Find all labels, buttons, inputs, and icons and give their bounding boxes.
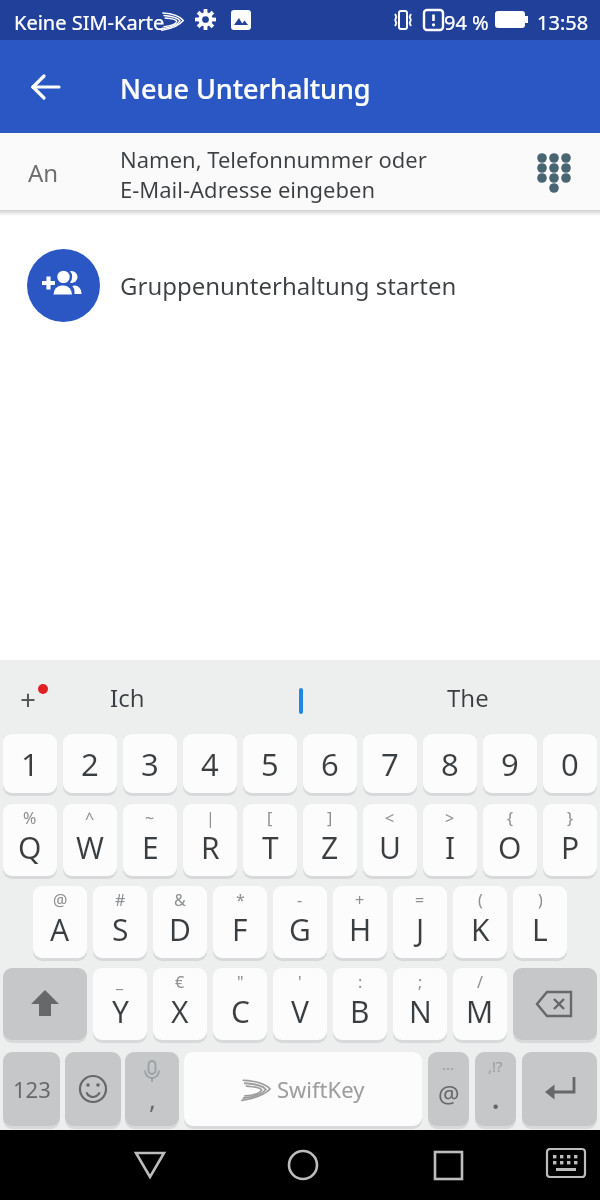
staticText: _ <box>116 971 124 993</box>
button[interactable]: 1 <box>3 734 57 793</box>
staticText: Keine SIM-Karte <box>14 9 165 36</box>
staticText: S <box>112 909 129 950</box>
button[interactable]: ~ <box>123 804 177 876</box>
button[interactable]: ( <box>453 886 507 958</box>
button[interactable] <box>513 968 597 1040</box>
button[interactable]: 0 <box>543 734 597 793</box>
button[interactable]: 123 <box>3 1052 60 1126</box>
button[interactable]: - <box>273 886 327 958</box>
button[interactable]: + <box>8 666 58 720</box>
button[interactable]: | <box>183 804 237 876</box>
staticText: < <box>385 807 395 829</box>
button[interactable]: 4 <box>183 734 237 793</box>
button[interactable]: # <box>93 886 147 958</box>
staticText: % <box>23 807 37 829</box>
button[interactable]: 5 <box>243 734 297 793</box>
staticText: @ <box>438 1077 460 1110</box>
button[interactable]: Gruppenunterhaltung starten <box>0 235 600 335</box>
staticText: Gruppenunterhaltung starten <box>120 269 457 302</box>
staticText: 123 <box>13 1074 51 1104</box>
button[interactable]: 2 <box>63 734 117 793</box>
button[interactable]: ; <box>393 968 447 1040</box>
button[interactable]: The <box>400 666 535 728</box>
button[interactable]: } <box>543 804 597 876</box>
staticText: 94 % <box>444 9 489 36</box>
button[interactable]: ] <box>303 804 357 876</box>
staticText: ) <box>538 889 543 911</box>
staticText: . <box>492 1081 500 1116</box>
button[interactable]: , <box>125 1052 179 1126</box>
button[interactable]: { <box>483 804 537 876</box>
button[interactable]: _ <box>93 968 147 1040</box>
button[interactable]: [ <box>243 804 297 876</box>
button[interactable]: 7 <box>363 734 417 793</box>
button[interactable] <box>65 1052 121 1126</box>
staticText: V <box>291 991 309 1032</box>
button[interactable]: " <box>213 968 267 1040</box>
button[interactable]: = <box>393 886 447 958</box>
button[interactable]: < <box>363 804 417 876</box>
button[interactable]: ' <box>273 968 327 1040</box>
staticText: C <box>231 991 250 1032</box>
staticText: } <box>567 807 574 829</box>
button[interactable]: 3 <box>123 734 177 793</box>
staticText: [ <box>267 807 273 829</box>
staticText: Namen, Telefonnummer oder <box>120 144 427 174</box>
staticText: * <box>236 889 245 911</box>
staticText: R <box>201 827 220 868</box>
button[interactable]: @ <box>33 886 87 958</box>
button[interactable] <box>538 1135 594 1191</box>
staticText: 6 <box>321 743 339 785</box>
button[interactable]: ... <box>428 1052 469 1126</box>
button[interactable]: ) <box>513 886 567 958</box>
button[interactable] <box>3 968 87 1040</box>
button[interactable]: An <box>0 133 600 210</box>
button[interactable]: Ich <box>60 666 195 728</box>
button[interactable]: 9 <box>483 734 537 793</box>
staticText: € <box>175 971 185 993</box>
staticText: ] <box>327 807 333 829</box>
button[interactable]: > <box>423 804 477 876</box>
staticText: 4 <box>201 743 219 785</box>
staticText: G <box>289 909 311 950</box>
button[interactable]: & <box>153 886 207 958</box>
button[interactable] <box>418 1135 478 1195</box>
staticText: ~ <box>145 807 155 829</box>
staticText: T <box>262 827 279 868</box>
staticText: I <box>445 827 456 868</box>
staticText: ^ <box>85 807 95 829</box>
staticText: U <box>379 827 401 868</box>
button[interactable] <box>522 1052 597 1126</box>
button[interactable]: + <box>333 886 387 958</box>
button[interactable]: 8 <box>423 734 477 793</box>
staticText: " <box>237 971 244 993</box>
button[interactable] <box>530 147 578 195</box>
staticText: H <box>349 909 372 950</box>
button[interactable]: ,!? <box>475 1052 516 1126</box>
staticText: N <box>409 991 432 1032</box>
button[interactable] <box>273 1135 333 1195</box>
staticText: ( <box>478 889 483 911</box>
staticText: # <box>115 889 126 911</box>
staticText: Y <box>112 991 129 1032</box>
staticText: 1 <box>21 743 39 785</box>
staticText: E-Mail-Adresse eingeben <box>120 174 376 204</box>
button[interactable]: : <box>333 968 387 1040</box>
staticText: = <box>415 889 425 911</box>
staticText: 8 <box>441 743 459 785</box>
staticText: + <box>355 889 365 911</box>
button[interactable]: / <box>453 968 507 1040</box>
staticText: Q <box>18 827 42 868</box>
staticText: Z <box>321 827 339 868</box>
button[interactable] <box>120 1135 180 1195</box>
staticText: D <box>169 909 191 950</box>
button[interactable]: € <box>153 968 207 1040</box>
button[interactable]: % <box>3 804 57 876</box>
button[interactable] <box>22 63 70 111</box>
button[interactable]: ^ <box>63 804 117 876</box>
staticText: M <box>466 991 494 1032</box>
button[interactable]: 6 <box>303 734 357 793</box>
button[interactable]: SwiftKey <box>184 1052 422 1126</box>
button[interactable]: * <box>213 886 267 958</box>
staticText: + <box>20 680 37 718</box>
